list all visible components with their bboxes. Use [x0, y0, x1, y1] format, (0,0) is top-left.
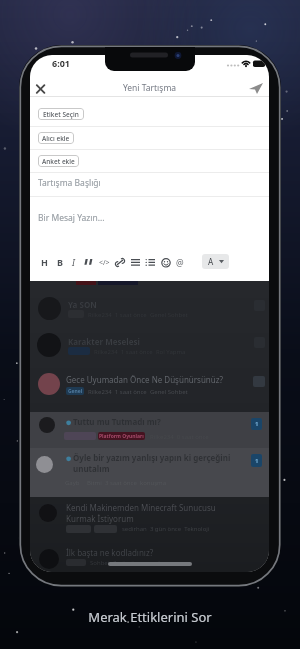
staticText: Etiket Seçin — [43, 110, 79, 119]
button[interactable] — [248, 79, 266, 97]
button[interactable]: Tuttu mu Tutmadı mı? — [30, 412, 269, 448]
staticText: Sohbet 3 gün önce yazılım — [90, 559, 167, 567]
button[interactable]: B — [57, 256, 63, 268]
button[interactable]: İlk başta ne kodladınız? — [30, 542, 269, 572]
button[interactable]: Anket ekle — [38, 155, 79, 167]
button[interactable] — [32, 80, 50, 98]
staticText: Ya SON — [68, 299, 97, 310]
staticText: sedirhan 3 gün önce Teknoloji — [122, 525, 210, 533]
staticText: Tartışma Başlığı — [38, 177, 101, 189]
staticText: 1 — [255, 420, 259, 428]
button[interactable]: H — [41, 256, 48, 268]
button[interactable]: Kendi Makinemden Minecraft Sunucusu — [30, 497, 269, 542]
button[interactable]: A — [202, 254, 229, 269]
staticText: Platform Oyunları — [99, 433, 144, 440]
staticText: İlk başta ne kodladınız? — [66, 547, 154, 558]
button[interactable]: Alıcı ekle — [38, 132, 74, 144]
staticText: Karakter Meselesi — [68, 336, 140, 347]
staticText: A — [208, 256, 214, 267]
button[interactable]: Ya SON — [30, 289, 269, 328]
button[interactable]: @ — [176, 257, 184, 269]
staticText: Genel — [68, 388, 83, 395]
button[interactable] — [84, 258, 94, 267]
button[interactable] — [145, 258, 156, 268]
button[interactable]: Öyle bir yazım yanlışı yapın ki gerçeğin… — [30, 448, 269, 497]
button[interactable]: </> — [99, 258, 110, 268]
staticText: 6:01 — [52, 57, 70, 69]
button[interactable]: 1 — [251, 454, 262, 467]
button[interactable]: Karakter Meselesi — [30, 326, 269, 365]
staticText: Tuttu mu Tutmadı mı? — [73, 416, 161, 427]
button[interactable]: Gece Uyumadan Önce Ne Düşünürsünüz? — [30, 367, 269, 404]
staticText: Gece Uyumadan Önce Ne Düşünürsünüz? — [66, 374, 223, 385]
staticText: unutalım — [73, 463, 110, 474]
staticText: Merak Ettiklerini Sor — [0, 608, 300, 626]
button[interactable] — [130, 258, 141, 268]
staticText: Öyle bir yazım yanlışı yapın ki gerçeğin… — [73, 452, 231, 463]
button[interactable]: I — [72, 256, 75, 268]
staticText: Anket ekle — [42, 157, 75, 166]
staticText: Kendi Makinemden Minecraft Sunucusu — [66, 502, 216, 513]
button[interactable]: Etiket Seçin — [38, 108, 84, 120]
staticText: Bir Mesaj Yazın... — [38, 212, 105, 224]
staticText: Rilke234 1 saat önce Genel Sohbet — [88, 388, 188, 396]
staticText: Yeni Tartışma — [30, 82, 269, 94]
button[interactable] — [115, 258, 125, 268]
button[interactable] — [161, 258, 171, 268]
button[interactable]: 1 — [251, 418, 262, 430]
staticText: 1 — [255, 457, 259, 465]
staticText: Alıcı ekle — [42, 134, 70, 143]
staticText: Kurmak İstiyorum — [66, 513, 134, 524]
